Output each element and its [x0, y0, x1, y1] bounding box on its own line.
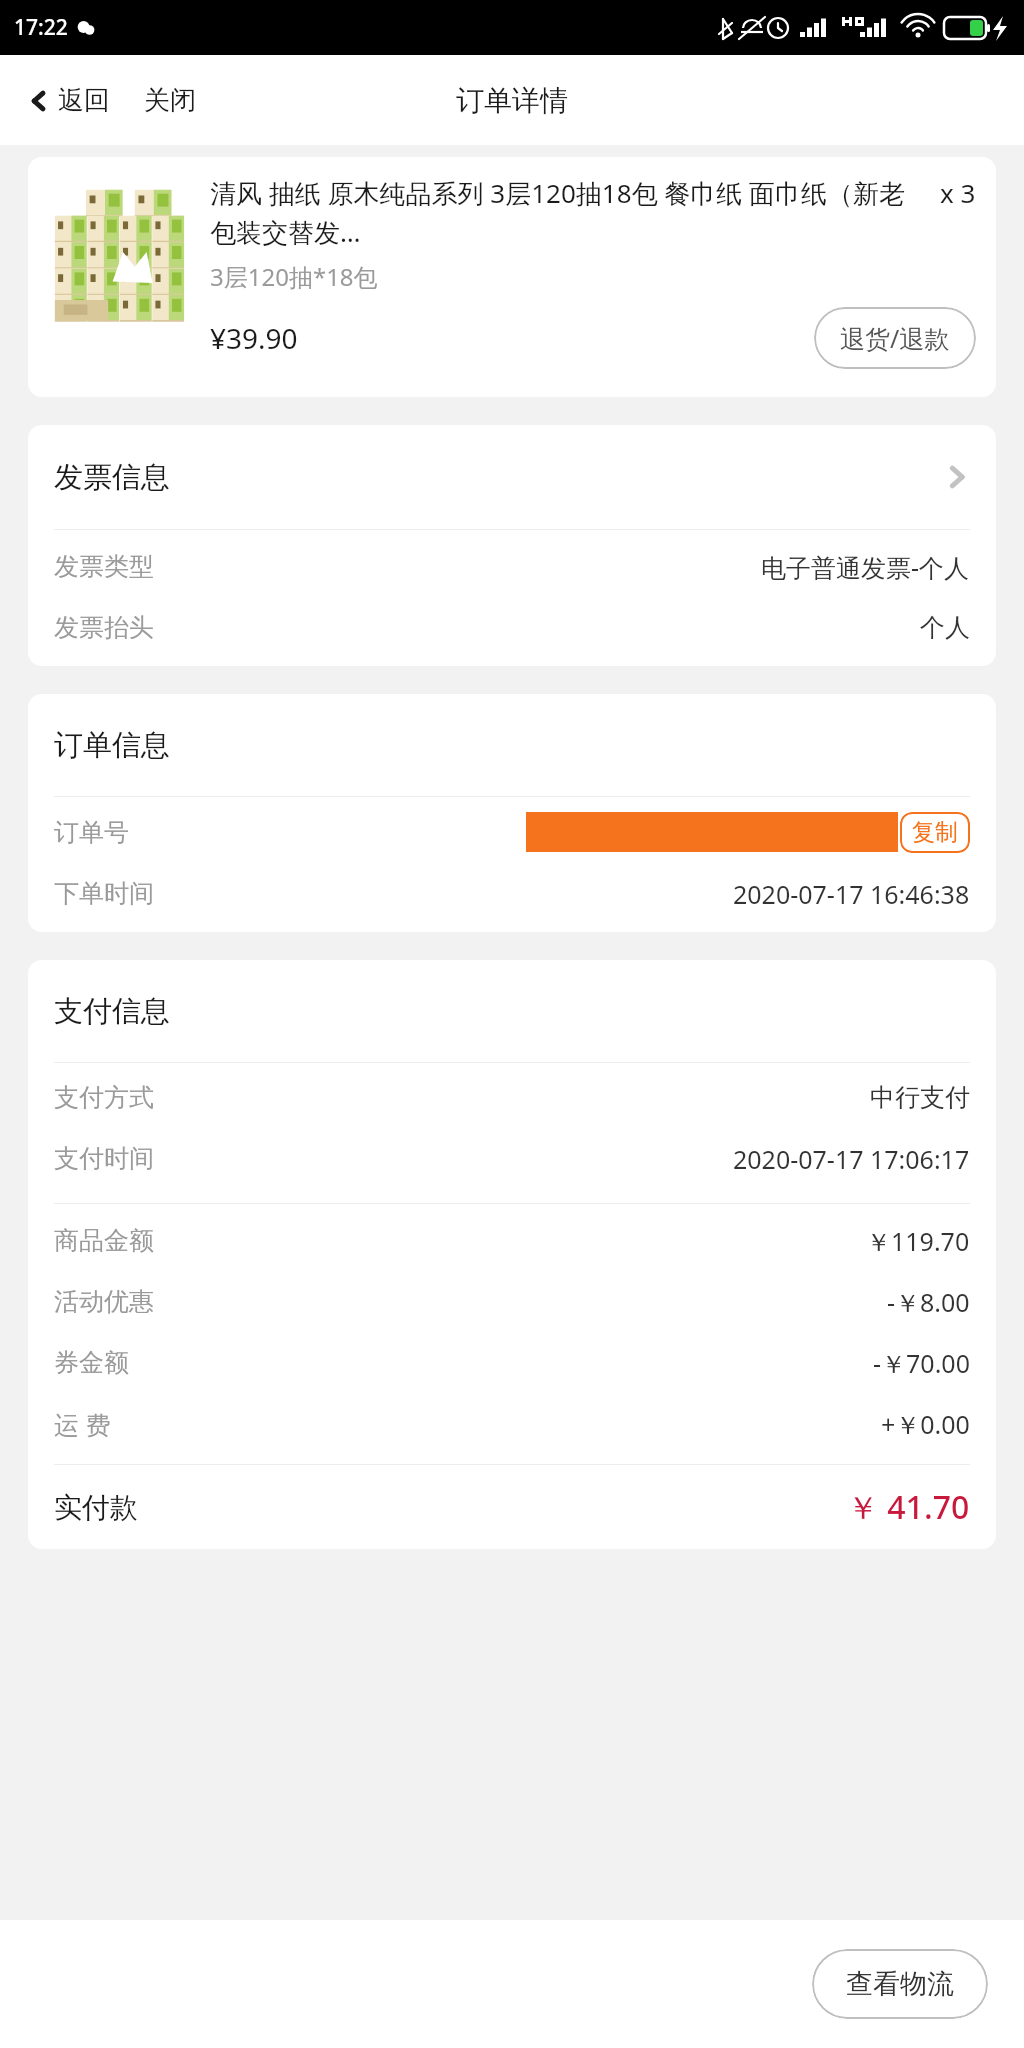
staticText: ¥39.90	[210, 319, 298, 357]
staticText: 订单信息	[54, 727, 170, 764]
button[interactable]: 关闭	[138, 76, 202, 125]
other: 发票信息详情	[944, 464, 970, 490]
staticText: -￥70.00	[873, 1346, 970, 1380]
staticText: 17:22	[14, 13, 68, 42]
staticText: 订单详情	[456, 83, 568, 118]
staticText: 复制	[912, 818, 958, 847]
staticText: 2020-07-17 17:06:17	[733, 1142, 970, 1176]
staticText: 发票类型	[54, 551, 154, 582]
staticText: 3层120抽*18包	[210, 260, 378, 293]
staticText: +￥0.00	[881, 1407, 970, 1441]
staticText: 支付信息	[54, 993, 170, 1030]
staticText: 发票抬头	[54, 612, 154, 643]
button[interactable]: 返回	[22, 76, 116, 125]
staticText: 下单时间	[54, 878, 154, 909]
staticText: 2020-07-17 16:46:38	[733, 877, 970, 911]
staticText: 清风 抽纸 原木纯品系列 3层120抽18包 餐巾纸 面巾纸（新老包装交替发…	[210, 175, 928, 250]
staticText: ￥ 41.70	[847, 1485, 970, 1529]
staticText: 返回	[58, 84, 110, 117]
staticText: 查看物流	[846, 1967, 954, 2001]
staticText: 中行支付	[870, 1082, 970, 1113]
button[interactable]: 复制	[900, 812, 970, 853]
staticText: x 3	[940, 175, 976, 210]
staticText: 活动优惠	[54, 1286, 154, 1317]
staticText: ￥119.70	[866, 1224, 970, 1258]
button[interactable]: 查看物流	[812, 1949, 988, 2019]
staticText: 个人	[920, 612, 970, 643]
staticText: 运 费	[54, 1407, 111, 1441]
staticText: -￥8.00	[887, 1285, 970, 1319]
staticText: 发票信息	[54, 459, 170, 496]
staticText: 支付时间	[54, 1143, 154, 1174]
staticText: 券金额	[54, 1347, 129, 1378]
button[interactable]: 发票信息	[28, 425, 996, 529]
button[interactable]: 退货/退款	[814, 307, 976, 369]
staticText: 商品金额	[54, 1225, 154, 1256]
staticText: 退货/退款	[840, 321, 950, 355]
staticText: 订单号	[54, 817, 129, 848]
staticText: 电子普通发票-个人	[761, 550, 970, 584]
staticText: 关闭	[144, 84, 196, 117]
staticText: 实付款	[54, 1490, 138, 1525]
staticText: 支付方式	[54, 1082, 154, 1113]
